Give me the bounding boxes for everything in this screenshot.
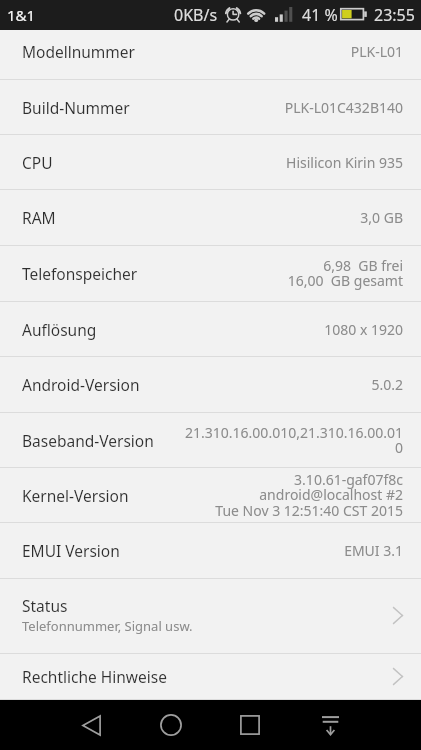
button[interactable]: Status (0, 579, 421, 654)
staticText: Baseband-Version (22, 430, 154, 451)
button[interactable]: Telefonspeicher (0, 246, 421, 302)
staticText: Kernel-Version (22, 485, 129, 506)
staticText: 5.0.2 (371, 375, 403, 394)
staticText: 23:55 (374, 4, 415, 26)
staticText: 0KB/s (174, 4, 218, 26)
staticText: 3.10.61-gaf07f8c android@localhost #2 Tu… (215, 470, 403, 521)
staticText: Hisilicon Kirin 935 (286, 153, 403, 172)
staticText: Status (22, 595, 68, 616)
staticText: 21.310.16.00.010,21.310.16.00.01 0 (185, 423, 403, 458)
button[interactable]: Auflösung (0, 302, 421, 357)
staticText: Auflösung (22, 319, 97, 340)
staticText: 41 % (302, 4, 338, 26)
button[interactable]: Home (147, 701, 195, 749)
staticText: RAM (22, 207, 56, 228)
button[interactable]: Build-Nummer (0, 80, 421, 135)
staticText: PLK-L01C432B140 (284, 98, 403, 117)
staticText: Modellnummer (22, 41, 135, 62)
button[interactable]: Back (67, 701, 115, 749)
staticText: 3,0 GB (360, 208, 403, 227)
button[interactable]: Recent apps (226, 701, 274, 749)
staticText: EMUI Version (22, 540, 120, 561)
staticText: EMUI 3.1 (344, 541, 403, 560)
button[interactable]: Modellnummer (0, 30, 421, 80)
staticText: CPU (22, 152, 53, 173)
button[interactable]: Baseband-Version (0, 413, 421, 468)
staticText: Rechtliche Hinweise (22, 666, 167, 687)
button[interactable]: RAM (0, 190, 421, 246)
staticText: 1&1 (7, 5, 36, 25)
button[interactable]: Android-Version (0, 357, 421, 413)
button[interactable]: CPU (0, 135, 421, 190)
button[interactable]: EMUI Version (0, 523, 421, 579)
staticText: Build-Nummer (22, 97, 130, 118)
staticText: Telefonnummer, Signal usw. (22, 617, 193, 635)
staticText: PLK-L01 (350, 42, 403, 61)
staticText: Telefonspeicher (22, 263, 138, 284)
button[interactable]: Rechtliche Hinweise (0, 654, 421, 700)
button[interactable]: Hide navigation bar (306, 701, 354, 749)
staticText: 1080 x 1920 (324, 320, 403, 339)
staticText: 6,98 GB frei 16,00 GB gesamt (287, 256, 403, 291)
button[interactable]: Kernel-Version (0, 468, 421, 523)
staticText: Android-Version (22, 374, 140, 395)
